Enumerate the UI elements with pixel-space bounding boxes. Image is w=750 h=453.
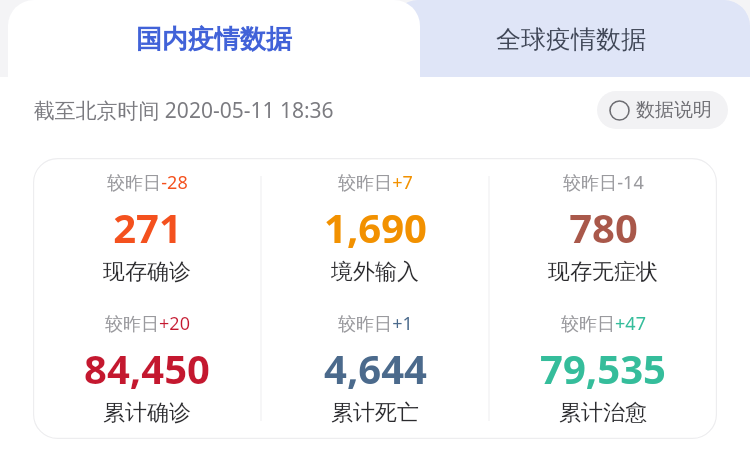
staticText: 累计死亡 [331, 399, 419, 427]
staticText: +1 [392, 311, 413, 336]
button[interactable]: 较昨日 [489, 298, 717, 439]
staticText: 较昨日 [107, 172, 161, 195]
staticText: 780 [569, 200, 638, 254]
staticText: -28 [161, 170, 188, 195]
staticText: 境外输入 [331, 258, 419, 286]
staticText: 累计治愈 [559, 399, 647, 427]
staticText: +47 [615, 311, 646, 336]
staticText: 较昨日 [338, 313, 392, 336]
staticText: 较昨日 [561, 313, 615, 336]
staticText: 国内疫情数据 [136, 23, 292, 56]
other: 数据说明 [609, 100, 630, 121]
button[interactable]: 数据说明 [597, 91, 728, 129]
button[interactable]: 较昨日 [33, 158, 261, 298]
staticText: 1,690 [324, 200, 427, 254]
button[interactable]: 较昨日 [261, 298, 489, 439]
staticText: 271 [113, 200, 182, 254]
staticText: 4,644 [324, 341, 427, 395]
staticText: 84,450 [84, 341, 210, 395]
staticText: 较昨日 [563, 172, 617, 195]
staticText: 数据说明 [636, 98, 712, 122]
staticText: +20 [159, 311, 190, 336]
staticText: 较昨日 [338, 172, 392, 195]
staticText: 现存无症状 [548, 258, 658, 286]
staticText: 累计确诊 [103, 399, 191, 427]
button[interactable]: 较昨日 [489, 158, 717, 298]
staticText: +7 [392, 170, 413, 195]
button[interactable]: 较昨日 [33, 298, 261, 439]
staticText: -14 [617, 170, 644, 195]
button[interactable]: 较昨日 [261, 158, 489, 298]
staticText: 现存确诊 [103, 258, 191, 286]
staticText: 全球疫情数据 [496, 24, 646, 55]
staticText: 较昨日 [105, 313, 159, 336]
button[interactable]: 全球疫情数据 [392, 0, 750, 78]
staticText: 截至北京时间 2020-05-11 18:36 [33, 96, 334, 125]
button[interactable]: 国内疫情数据 [8, 0, 420, 78]
staticText: 79,535 [540, 341, 666, 395]
